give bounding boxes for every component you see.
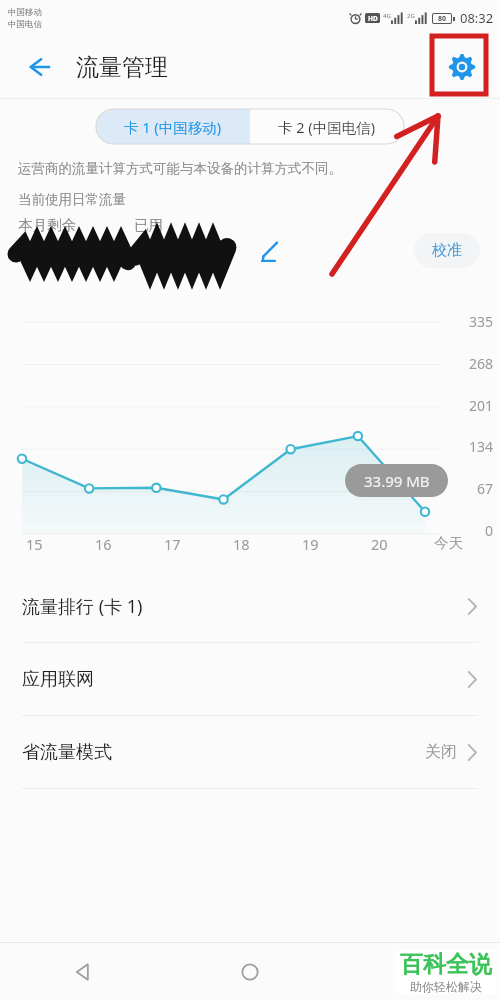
staticText: 19 [302,534,319,554]
staticText: 运营商的流量计算方式可能与本设备的计算方式不同。 [18,160,342,177]
staticText: 176 [18,235,58,266]
staticText: 134 [469,437,494,456]
staticText: 80 [438,14,447,23]
staticText: 校准 [432,241,462,260]
staticText: 335 [469,312,494,331]
staticText: 中国移动 [8,7,42,18]
button[interactable]: Settings [438,43,486,91]
staticText: 流量排行 (卡 1) [22,594,143,619]
staticText: 当前使用日常流量 [18,191,126,208]
staticText: 17 [164,534,181,554]
staticText: 关闭 [425,742,457,762]
staticText: 助你轻松解决 [410,979,482,994]
staticText: 20 [371,534,388,554]
button[interactable]: Back [14,43,62,91]
staticText: 4G [383,12,391,20]
staticText: 已用 [134,216,163,234]
staticText: 百科全说 [400,950,492,979]
staticText: 0 [485,521,494,540]
button[interactable]: 流量排行 (卡 1) [0,570,500,642]
staticText: 16 [95,534,112,554]
staticText: 流量管理 [76,53,168,82]
button[interactable]: Home [166,943,333,1000]
staticText: 卡 2 (中国电信) [278,117,376,137]
staticText: 应用联网 [22,668,94,691]
staticText: 本月剩余 [18,216,76,234]
staticText: 3224 [134,235,187,266]
staticText: 201 [469,396,494,415]
staticText: 今天 [434,534,463,552]
button[interactable]: 校准 [414,233,480,268]
staticText: 18 [233,534,250,554]
staticText: 33.99 MB [364,471,430,491]
button[interactable]: 应用联网 [0,643,500,715]
staticText: 2G [407,12,415,20]
button[interactable]: Back [0,943,166,1000]
button[interactable]: 卡 2 (中国电信) [250,109,404,144]
staticText: 67 [477,479,494,498]
staticText: 省流量模式 [22,741,112,764]
staticText: 卡 1 (中国移动) [124,117,222,137]
button[interactable]: Edit [250,231,290,271]
staticText: HD [368,14,378,23]
staticText: 中国电信 [8,19,42,30]
button[interactable]: 省流量模式 [0,716,500,788]
button[interactable]: Recents [333,943,500,1000]
staticText: 08:32 [460,9,494,27]
staticText: 268 [469,354,494,373]
staticText: 15 [26,534,43,554]
button[interactable]: 卡 1 (中国移动) [96,109,250,144]
